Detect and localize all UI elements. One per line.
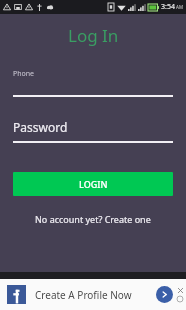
- staticText: Log In: [68, 24, 119, 47]
- staticText: No account yet? Create one: [35, 213, 151, 225]
- button[interactable]: LOGIN: [13, 172, 173, 196]
- staticText: LOGIN: [79, 178, 108, 190]
- staticText: Phone: [13, 69, 35, 79]
- button[interactable]: No account yet? Create one: [0, 213, 186, 225]
- staticText: 3:54: [161, 2, 175, 12]
- staticText: AM: [176, 4, 183, 10]
- staticText: Create A Profile Now: [35, 288, 132, 302]
- staticText: Password: [13, 119, 68, 135]
- button[interactable]: Close ad: [177, 287, 184, 294]
- button[interactable]: Create A Profile Now: [0, 279, 186, 310]
- button[interactable]: Open ad: [156, 286, 173, 303]
